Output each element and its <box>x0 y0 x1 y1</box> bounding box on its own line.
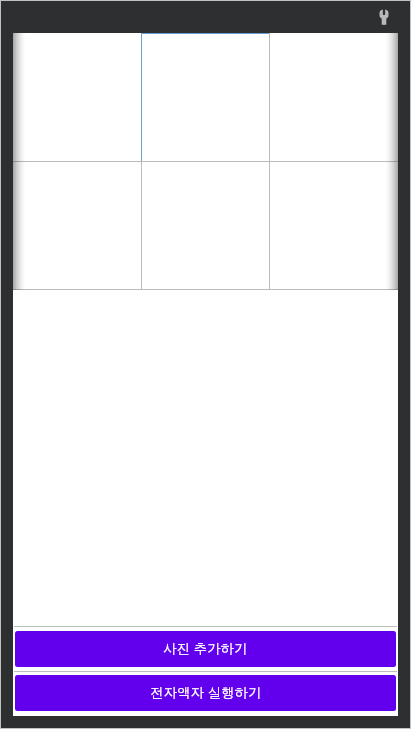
button[interactable]: 사진 슬롯 6 <box>270 161 398 289</box>
button[interactable]: Settings <box>371 4 397 30</box>
button[interactable]: 사진 슬롯 3 <box>270 33 398 161</box>
staticText: 사진 추가하기 <box>163 639 248 657</box>
button[interactable]: 사진 슬롯 1 <box>13 33 142 161</box>
button[interactable]: 사진 추가하기 <box>15 631 396 667</box>
button[interactable]: 사진 슬롯 2 <box>142 33 270 161</box>
button[interactable]: 전자액자 실행하기 <box>15 675 396 711</box>
button[interactable]: 사진 슬롯 5 <box>142 161 270 289</box>
button[interactable]: 사진 슬롯 4 <box>13 161 142 289</box>
staticText: 전자액자 실행하기 <box>150 683 262 701</box>
